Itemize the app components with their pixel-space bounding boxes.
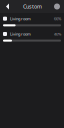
staticText: Living room [10,31,31,37]
staticText: 40% [54,31,61,37]
button[interactable]: Info [52,1,62,11]
staticText: 66% [54,16,61,21]
staticText: Custom [23,3,42,10]
button[interactable]: Back [2,0,13,13]
staticText: Living room [10,16,31,21]
